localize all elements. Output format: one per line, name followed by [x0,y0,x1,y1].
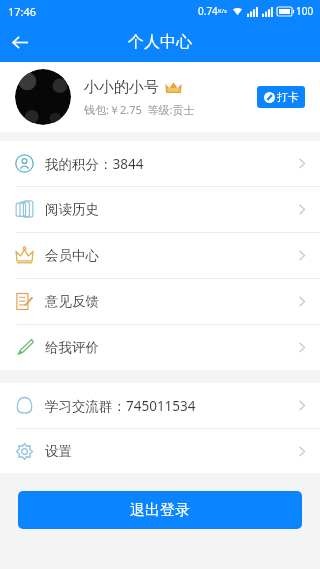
button[interactable]: 阅读历史 [0,187,320,232]
staticText: 打卡 [277,90,299,104]
button[interactable]: 会员中心 [0,233,320,278]
button[interactable]: 我的积分：3844 [0,141,320,186]
staticText: 学习交流群：745011534 [45,397,299,415]
staticText: 意见反馈 [45,293,299,310]
staticText: 我的积分：3844 [45,155,299,173]
staticText: K/s [218,7,227,15]
staticText: 会员中心 [45,247,299,264]
staticText: 0.74 [198,4,218,18]
staticText: 小小的小号 [84,78,159,97]
staticText: 个人中心 [128,32,192,52]
staticText: 阅读历史 [45,201,299,218]
staticText: 100 [296,4,314,18]
staticText: 给我评价 [45,339,299,356]
button[interactable]: 设置 [0,429,320,473]
staticText: 17:46 [8,4,37,19]
button[interactable]: 给我评价 [0,325,320,370]
button[interactable]: 打卡 [257,86,305,108]
button[interactable]: Back [0,22,40,62]
button[interactable]: 退出登录 [18,491,302,529]
button[interactable]: 学习交流群：745011534 [0,383,320,428]
staticText: 钱包:￥2.75 等级:贡士 [84,102,195,117]
staticText: 退出登录 [130,501,190,520]
staticText: 设置 [45,443,299,460]
button[interactable]: 意见反馈 [0,279,320,324]
